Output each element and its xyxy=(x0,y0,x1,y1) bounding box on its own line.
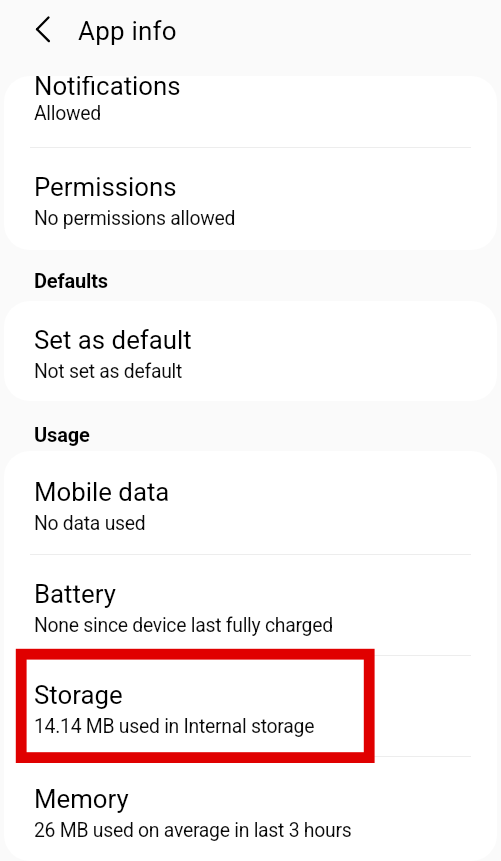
staticText: 14.14 MB used in Internal storage xyxy=(34,715,315,738)
staticText: Memory xyxy=(34,784,129,814)
staticText: App info xyxy=(78,16,177,46)
button[interactable]: Battery xyxy=(4,555,497,655)
staticText: Set as default xyxy=(34,325,192,355)
button[interactable]: Permissions xyxy=(4,148,497,250)
button[interactable]: Back xyxy=(22,8,64,50)
staticText: Not set as default xyxy=(34,360,183,383)
button[interactable]: Storage xyxy=(4,656,497,756)
staticText: Storage xyxy=(34,680,123,710)
staticText: Permissions xyxy=(34,172,177,202)
staticText: Mobile data xyxy=(34,477,170,507)
button[interactable]: Notifications xyxy=(4,76,497,147)
staticText: None since device last fully charged xyxy=(34,614,333,637)
staticText: Usage xyxy=(34,423,90,446)
staticText: No data used xyxy=(34,512,146,535)
staticText: Allowed xyxy=(34,102,101,125)
staticText: Battery xyxy=(34,579,116,609)
button[interactable]: Memory xyxy=(4,757,497,861)
button[interactable]: Set as default xyxy=(4,301,497,401)
staticText: 26 MB used on average in last 3 hours xyxy=(34,819,352,842)
staticText: Defaults xyxy=(34,269,108,292)
button[interactable]: Mobile data xyxy=(4,451,497,554)
staticText: Notifications xyxy=(34,76,181,101)
staticText: No permissions allowed xyxy=(34,207,236,230)
